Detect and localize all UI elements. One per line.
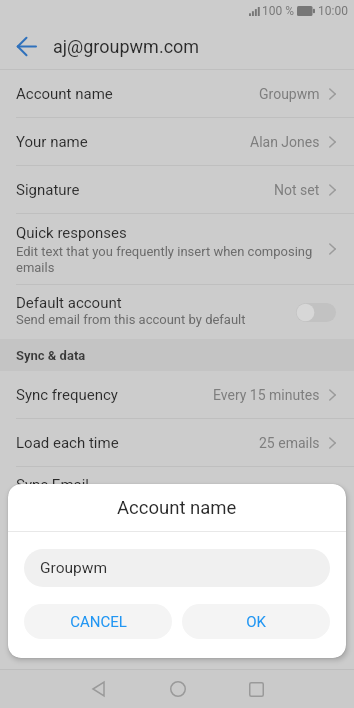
staticText: Account name [16,85,113,103]
button[interactable]: Toggle [296,303,336,322]
staticText: Every 15 minutes [213,387,320,403]
button[interactable]: Sync frequency [0,371,354,418]
button[interactable]: Recents [234,670,279,708]
staticText: 10:00 [318,4,348,18]
staticText: Signature [16,181,80,199]
staticText: Sync frequency [16,386,118,404]
staticText: OK [246,613,266,631]
staticText: Sync & data [16,348,86,363]
staticText: Groupwm [259,86,320,102]
button[interactable]: Account name [0,70,354,117]
staticText: aj@groupwm.com [53,36,200,57]
button[interactable]: Your name [0,118,354,165]
button[interactable]: CANCEL [24,604,172,639]
staticText: Quick responses [16,224,127,242]
staticText: Load each time [16,434,119,452]
button[interactable]: OK [182,604,330,639]
button[interactable]: Groupwm [24,549,330,587]
button[interactable]: Default account [0,285,354,339]
staticText: Sync email for this account [16,494,173,509]
staticText: Groupwm [40,559,107,577]
staticText: Your name [16,133,88,151]
button[interactable]: Signature [0,166,354,213]
button[interactable]: Back [76,670,121,708]
staticText: Sync Email [16,476,89,494]
button[interactable]: Load each time [0,419,354,466]
staticText: CANCEL [70,613,127,631]
button[interactable]: Sync Email [0,467,354,521]
staticText: Account name [117,497,237,519]
staticText: Edit text that you frequently insert whe… [16,244,313,275]
button[interactable]: Quick responses [0,214,354,284]
button[interactable]: Back [9,29,43,63]
staticText: 25 emails [259,435,320,451]
staticText: 100 % [262,4,294,18]
button[interactable]: Home [155,670,200,708]
staticText: Default account [16,294,122,312]
staticText: Not set [274,182,320,198]
staticText: Send email from this account by default [16,312,246,327]
staticText: Alan Jones [250,134,320,150]
